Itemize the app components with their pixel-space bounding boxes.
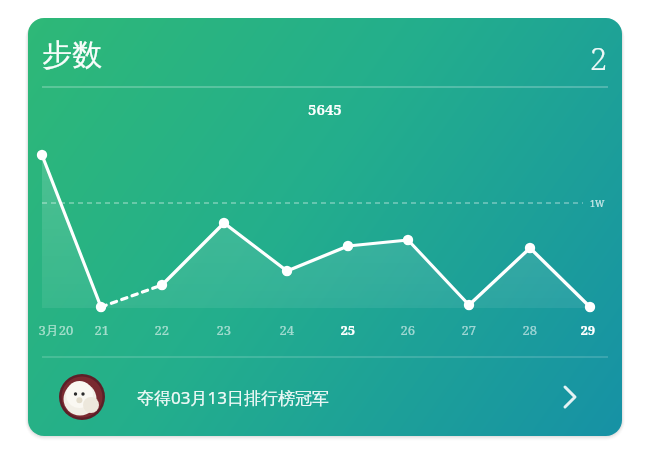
button[interactable]: 步数 5645 步，查看详情 bbox=[0, 0, 650, 460]
